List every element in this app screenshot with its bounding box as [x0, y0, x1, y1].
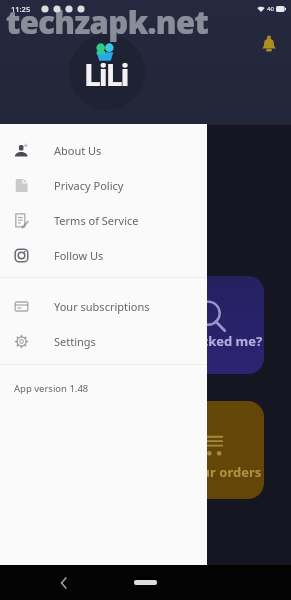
staticText: App version 1.48 — [14, 382, 89, 395]
button[interactable]: Your orders — [26, 401, 264, 499]
button[interactable]: Home — [134, 580, 157, 585]
button[interactable]: Who checked me? — [26, 276, 264, 374]
staticText: Who checked me? — [146, 332, 263, 350]
staticText: About Us — [54, 143, 102, 158]
staticText: LiLi — [84, 54, 128, 95]
staticText: 11:25 — [11, 4, 31, 14]
button[interactable]: About Us — [0, 133, 207, 168]
button[interactable]: Follow Us — [0, 238, 207, 273]
button[interactable]: Settings — [0, 324, 207, 359]
button[interactable]: Your subscriptions — [0, 289, 207, 324]
staticText: Settings — [54, 334, 96, 349]
staticText: Your subscriptions — [54, 299, 150, 314]
button[interactable]: Back — [55, 575, 71, 591]
staticText: Terms of Service — [54, 213, 139, 228]
button[interactable]: Privacy Policy — [0, 168, 207, 203]
staticText: Your orders — [186, 463, 262, 481]
staticText: Follow Us — [54, 248, 104, 263]
staticText: 40 — [267, 5, 274, 13]
staticText: techzapk.net — [6, 1, 209, 43]
button[interactable]: Notifications — [259, 34, 279, 54]
staticText: Privacy Policy — [54, 178, 124, 193]
button[interactable]: Terms of Service — [0, 203, 207, 238]
